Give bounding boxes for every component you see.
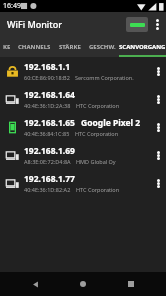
button[interactable]: 192.168.1.77 (0, 169, 166, 197)
staticText: HTC Corporation (76, 186, 120, 193)
button[interactable]: CHANNELS (14, 36, 54, 57)
staticText: HTC Corporation (76, 102, 120, 109)
button[interactable]: Back (22, 272, 48, 296)
staticText: 192.168.1.69 (24, 145, 75, 157)
button[interactable]: Home (70, 272, 96, 296)
staticText: HTC Corporation (75, 130, 119, 137)
button[interactable]: 192.168.1.64 (0, 85, 166, 113)
staticText: 192.168.1.65 (24, 117, 75, 129)
staticText: A8:3E:0E:72:D4:8A (24, 158, 71, 165)
staticText: KE (3, 43, 11, 51)
button[interactable]: Device options (150, 169, 166, 197)
staticText: GESCHW. (89, 43, 116, 51)
staticText: CHANNELS (18, 43, 51, 51)
button[interactable]: KE (0, 36, 14, 57)
button[interactable]: Device options (150, 85, 166, 113)
staticText: 192.168.1.77 (24, 173, 75, 185)
staticText: 40:4E:36:1D:82:A2 (24, 186, 71, 193)
staticText: SCANVORGANG (119, 43, 166, 51)
button[interactable]: SCANVORGANG (119, 36, 166, 57)
staticText: 16:49 (3, 1, 21, 11)
button[interactable]: Recent apps (118, 272, 144, 296)
button[interactable]: 192.168.1.65 (0, 113, 166, 141)
button[interactable]: STÄRKE (54, 36, 86, 57)
staticText: 192.168.1.64 (24, 89, 75, 101)
staticText: WiFi Monitor (7, 18, 63, 30)
staticText: 192.168.1.1 (24, 61, 71, 73)
staticText: STÄRKE (59, 43, 81, 51)
button[interactable]: More options (148, 15, 166, 33)
staticText: Sercomm Corporation. (75, 74, 134, 81)
button[interactable]: Toggle scanning (126, 17, 148, 32)
staticText: HMD Global Oy (76, 158, 116, 165)
button[interactable]: GESCHW. (86, 36, 119, 57)
staticText: 40:4E:36:1D:2A:38 (24, 102, 71, 109)
staticText: Google Pixel 2 (81, 117, 141, 129)
button[interactable]: Device options (150, 57, 166, 85)
staticText: 40:4E:36:84:1C:85 (24, 130, 70, 137)
button[interactable]: 192.168.1.1 (0, 57, 166, 85)
button[interactable]: 192.168.1.69 (0, 141, 166, 169)
staticText: 60:CE:86:90:18:B2 (24, 74, 70, 81)
button[interactable]: Device options (150, 141, 166, 169)
button[interactable]: Device options (150, 113, 166, 141)
